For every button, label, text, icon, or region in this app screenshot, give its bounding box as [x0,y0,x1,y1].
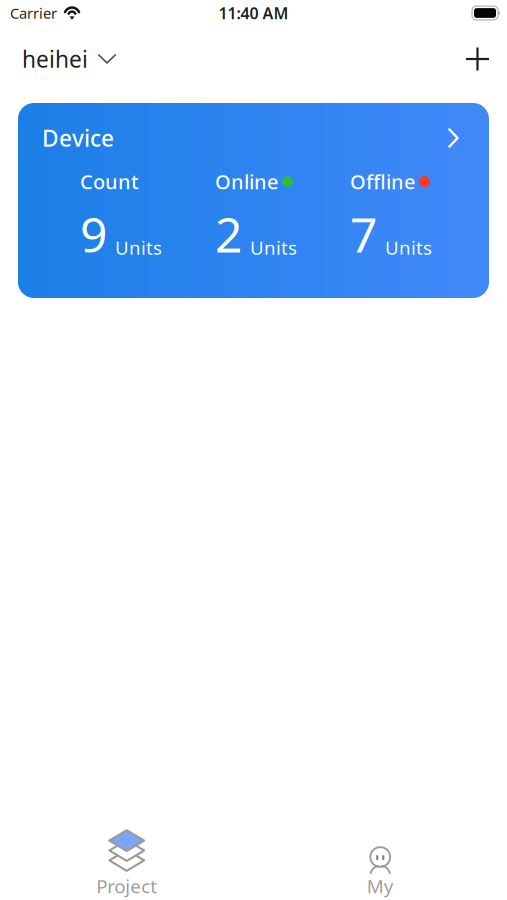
staticText: Offline [350,168,415,195]
staticText: Count [80,168,139,195]
staticText: Device [42,123,114,153]
staticText: 2 [215,202,242,266]
staticText: My [367,874,394,898]
staticText: Units [250,235,297,260]
button[interactable]: My [253,818,507,900]
staticText: Project [96,874,157,898]
staticText: 11:40 AM [218,2,288,24]
button[interactable]: Project [0,818,253,900]
staticText: Units [385,235,432,260]
staticText: heihei [22,44,88,74]
staticText: 7 [350,202,377,266]
staticText: Carrier [10,3,57,23]
staticText: Units [115,235,162,260]
staticText: 9 [80,202,107,266]
button[interactable]: Device [18,103,489,298]
button[interactable]: Add [466,35,489,82]
staticText: Online [215,168,278,195]
button[interactable]: heihei [22,32,116,86]
